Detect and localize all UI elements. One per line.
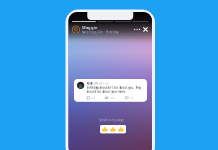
button[interactable]: Feist [74,79,147,102]
staticText: 1K [129,96,133,100]
button[interactable]: More options [134,26,140,32]
button[interactable]: Retweet [105,96,115,100]
staticText: 133 [109,96,115,100]
staticText: Send message [98,117,123,122]
staticText: @feist_123 [94,82,109,85]
staticText: Feist [87,82,93,85]
button[interactable]: Close story [142,26,148,32]
button[interactable]: React with a thumbs up [100,125,126,133]
button[interactable]: Like [125,96,133,100]
staticText: should be about your mom. [87,90,126,93]
staticText: 24 [91,96,95,100]
staticText: Birthdays shouldn't be about you. They [87,86,141,89]
staticText: Maggie [82,25,97,30]
staticText: Sweetings 24h · Yesterday [82,30,118,34]
button[interactable]: Reply [87,96,95,100]
